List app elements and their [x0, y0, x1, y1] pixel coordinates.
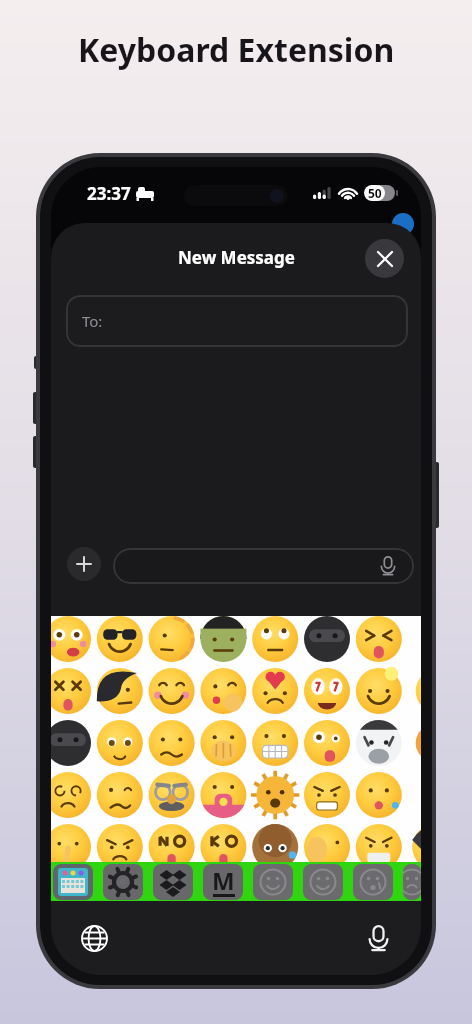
staticText: Keyboard Extension [78, 28, 395, 72]
button[interactable] [353, 717, 405, 769]
button[interactable] [249, 769, 301, 821]
button[interactable] [197, 613, 249, 665]
button[interactable] [353, 769, 405, 821]
staticText: To: [82, 311, 103, 331]
button[interactable] [301, 821, 353, 873]
button[interactable] [249, 821, 301, 873]
button[interactable] [146, 665, 198, 717]
button[interactable] [197, 665, 249, 717]
button[interactable] [403, 864, 421, 900]
button[interactable] [51, 717, 94, 769]
button[interactable] [365, 239, 404, 278]
button[interactable] [94, 613, 146, 665]
button[interactable]: M [203, 864, 243, 900]
button[interactable] [51, 769, 94, 821]
button[interactable] [353, 613, 405, 665]
button[interactable] [67, 547, 101, 581]
button[interactable] [103, 864, 143, 900]
button[interactable] [301, 665, 353, 717]
button[interactable] [146, 717, 198, 769]
button[interactable] [153, 864, 193, 900]
button[interactable] [51, 821, 94, 873]
button[interactable] [249, 613, 301, 665]
button[interactable] [146, 769, 198, 821]
button[interactable] [353, 864, 393, 900]
staticText: 23:37 [87, 182, 131, 205]
button[interactable] [53, 864, 93, 900]
button[interactable] [197, 769, 249, 821]
button[interactable] [301, 613, 353, 665]
button[interactable] [353, 665, 405, 717]
button[interactable]: To: [66, 295, 408, 347]
button[interactable] [94, 717, 146, 769]
staticText: M [212, 864, 235, 897]
button[interactable] [94, 821, 146, 873]
button[interactable] [249, 665, 301, 717]
button[interactable] [146, 613, 198, 665]
button[interactable] [197, 821, 249, 873]
button[interactable] [249, 717, 301, 769]
button[interactable] [94, 769, 146, 821]
button[interactable] [253, 864, 293, 900]
button[interactable] [351, 911, 405, 965]
button[interactable] [197, 717, 249, 769]
button[interactable] [113, 548, 414, 584]
button[interactable] [94, 665, 146, 717]
staticText: 50 [368, 185, 382, 201]
button[interactable] [301, 717, 353, 769]
button[interactable] [303, 864, 343, 900]
button[interactable] [353, 821, 405, 873]
button[interactable] [67, 911, 121, 965]
button[interactable] [51, 665, 94, 717]
button[interactable] [301, 769, 353, 821]
staticText: New Message [178, 246, 295, 269]
button[interactable] [51, 613, 94, 665]
button[interactable] [146, 821, 198, 873]
